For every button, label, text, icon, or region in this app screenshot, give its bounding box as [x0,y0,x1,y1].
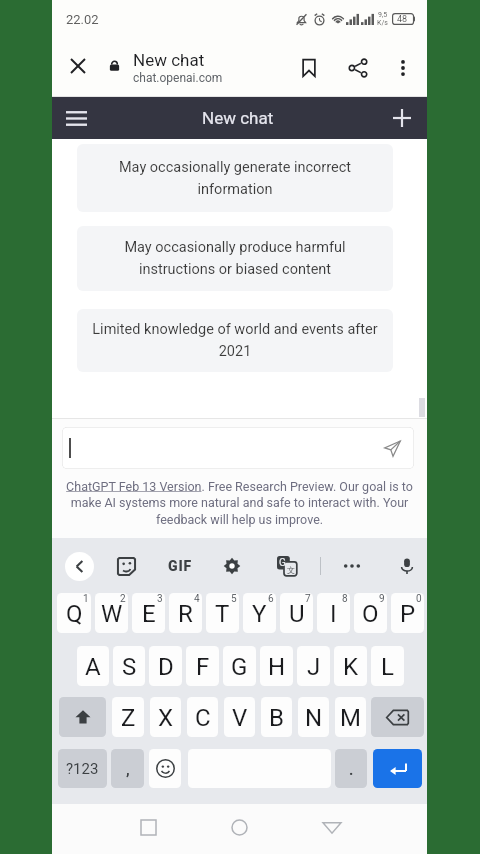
staticText: M [340,704,361,732]
staticText: Y [252,600,267,628]
button[interactable]: Backspace [371,697,424,737]
button[interactable]: GIF [162,552,198,580]
button[interactable]: Stickers [111,551,141,581]
button[interactable]: E [132,593,165,633]
staticText: X [158,704,174,732]
staticText: , [126,761,130,779]
staticText: Limited knowledge of world and events af… [85,321,385,360]
staticText: 2 [120,593,126,605]
staticText: G [279,557,286,569]
button[interactable]: K [334,646,367,686]
staticText: 3 [157,593,163,605]
button[interactable]: Z [112,697,144,737]
staticText: Q [66,600,83,628]
button[interactable]: Send [62,427,414,469]
button[interactable]: . [335,749,367,788]
button[interactable]: R [169,593,202,633]
staticText: May occasionally generate incorrect info… [85,159,385,198]
button[interactable]: New chat [385,101,419,135]
staticText: E [142,600,156,628]
staticText: Z [121,704,136,732]
staticText: A [85,653,101,681]
staticText: U [289,600,305,628]
staticText: K [343,653,359,681]
button[interactable]: I [317,593,350,633]
button[interactable]: S [113,646,145,686]
button[interactable]: Close [60,48,96,84]
button[interactable]: More [337,551,367,581]
staticText: 4 [194,593,200,605]
button[interactable]: O [354,593,387,633]
staticText: C [195,704,211,732]
button[interactable]: J [297,646,330,686]
staticText: 1 [83,593,89,605]
button[interactable]: Y [243,593,276,633]
button[interactable]: May occasionally generate incorrect info… [77,144,393,212]
button[interactable]: Back [65,552,94,581]
button[interactable]: Menu [59,101,93,135]
button[interactable]: Settings [217,551,247,581]
button[interactable]: Shift [59,697,106,737]
button[interactable]: Limited knowledge of world and events af… [77,309,393,372]
button[interactable]: Recent apps [128,807,168,847]
staticText: 6 [268,593,274,605]
button[interactable]: W [95,593,128,633]
button[interactable]: L [371,646,404,686]
button[interactable]: , [111,749,144,788]
staticText: R [178,600,193,628]
button[interactable]: N [298,697,329,737]
button[interactable]: G [223,646,256,686]
staticText: 9,5 [378,11,388,19]
staticText: J [307,653,321,681]
staticText: chat.openai.com [133,71,223,85]
staticText: G [231,653,248,681]
staticText: 22.02 [66,12,99,27]
button[interactable]: H [260,646,293,686]
staticText: 48 [397,14,408,25]
button[interactable]: May occasionally produce harmful instruc… [77,226,393,291]
button[interactable]: Home [219,807,259,847]
staticText: ChatGPT Feb 13 Version. Free Research Pr… [64,479,415,527]
staticText: GIF [168,558,193,574]
staticText: New chat [202,108,274,128]
staticText: 8 [342,593,348,605]
button[interactable]: T [206,593,239,633]
staticText: P [400,600,416,628]
button[interactable]: P [391,593,424,633]
button[interactable]: Voice input [392,551,422,581]
button[interactable]: C [187,697,218,737]
staticText: S [122,653,137,681]
button[interactable]: U [280,593,313,633]
button[interactable]: Q [57,593,91,633]
staticText: W [101,600,123,628]
staticText: F [196,653,210,681]
button[interactable]: Send [378,434,406,462]
button[interactable]: A [77,646,109,686]
staticText: I [330,600,337,628]
button[interactable]: X [150,697,181,737]
button[interactable]: Emoji [149,749,181,788]
button[interactable]: Enter [373,749,422,788]
button[interactable]: More options [383,48,423,88]
button[interactable]: F [186,646,219,686]
staticText: B [269,704,284,732]
staticText: 文 [287,565,295,575]
button[interactable]: D [149,646,182,686]
button[interactable]: Bookmark [289,48,329,88]
button[interactable]: V [224,697,255,737]
button[interactable]: ?123 [58,749,107,788]
staticText: K/s [377,19,388,27]
staticText: D [158,653,174,681]
staticText: O [362,600,379,628]
staticText: 0 [416,593,422,605]
staticText: N [305,704,323,732]
button[interactable]: Back [312,807,352,847]
button[interactable]: M [335,697,366,737]
staticText: V [232,704,248,732]
button[interactable]: Translate [272,551,302,581]
staticText: L [381,653,394,681]
button[interactable]: Share [338,48,378,88]
staticText: H [268,653,286,681]
button[interactable]: B [261,697,292,737]
